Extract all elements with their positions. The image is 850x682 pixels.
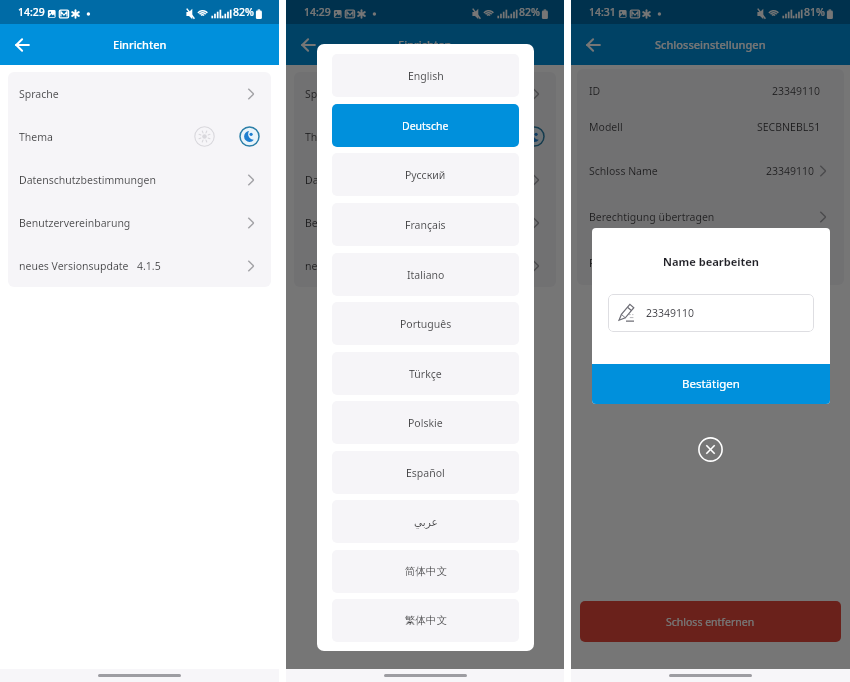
button[interactable]: Thema bbox=[8, 115, 271, 158]
staticText: SECBNEBL51 bbox=[757, 120, 821, 134]
staticText: English bbox=[408, 69, 444, 83]
button[interactable]: Deutsche bbox=[332, 104, 519, 147]
button[interactable]: Español bbox=[332, 451, 519, 494]
staticText: Deutsche bbox=[402, 119, 449, 133]
button[interactable]: Italiano bbox=[332, 253, 519, 296]
staticText: Thema bbox=[19, 130, 53, 144]
button[interactable]: Close bbox=[698, 437, 723, 462]
staticText: 81% bbox=[804, 5, 825, 19]
staticText: Italiano bbox=[407, 268, 445, 282]
staticText: عربي bbox=[414, 516, 438, 528]
staticText: Schloss Name bbox=[589, 164, 658, 178]
staticText: 14:29 bbox=[18, 5, 45, 19]
staticText: Datenschutzbestimmungen bbox=[305, 173, 442, 187]
staticText: 简体中文 bbox=[405, 565, 447, 578]
staticText: Polskie bbox=[408, 416, 443, 430]
staticText: ID bbox=[589, 84, 601, 98]
staticText: Datenschutzbestimmungen bbox=[19, 173, 156, 187]
button[interactable]: Polskie bbox=[332, 401, 519, 444]
button[interactable]: Light theme bbox=[194, 126, 215, 147]
button[interactable]: Back bbox=[294, 31, 322, 59]
button[interactable]: Schloss entfernen bbox=[580, 601, 841, 642]
button[interactable]: Thema bbox=[294, 115, 556, 158]
staticText: Benutzervereinbarung bbox=[305, 216, 417, 230]
staticText: 4.1.5 bbox=[137, 259, 161, 273]
button[interactable]: Passwort verwalten bbox=[577, 241, 844, 285]
button[interactable]: neues Versionsupdate bbox=[294, 244, 556, 287]
staticText: 23349110 bbox=[772, 84, 821, 98]
button[interactable]: Datenschutzbestimmungen bbox=[8, 158, 271, 201]
button[interactable]: Benutzervereinbarung bbox=[8, 201, 271, 244]
staticText: neues Versionsupdate bbox=[305, 259, 415, 273]
staticText: 23349110 bbox=[766, 164, 815, 178]
button[interactable]: Sprache bbox=[8, 72, 271, 115]
staticText: Русский bbox=[405, 168, 446, 182]
button[interactable]: English bbox=[332, 54, 519, 97]
staticText: 82% bbox=[233, 5, 254, 19]
staticText: Sprache bbox=[305, 87, 345, 101]
button[interactable]: 繁体中文 bbox=[332, 599, 519, 642]
staticText: Türkçe bbox=[409, 367, 442, 381]
button[interactable]: عربي bbox=[332, 500, 519, 543]
button[interactable]: Dark theme bbox=[524, 126, 545, 147]
staticText: Schloss entfernen bbox=[666, 615, 755, 629]
staticText: 23349110 bbox=[646, 306, 695, 320]
staticText: Schlosseinstellungen bbox=[655, 37, 766, 52]
staticText: Português bbox=[400, 317, 452, 331]
button[interactable]: Bestätigen bbox=[592, 364, 830, 404]
button[interactable]: Schloss Name bbox=[577, 148, 844, 194]
staticText: 82% bbox=[519, 5, 540, 19]
button[interactable]: 简体中文 bbox=[332, 550, 519, 593]
staticText: 14:31 bbox=[589, 5, 616, 19]
staticText: Español bbox=[406, 466, 445, 480]
staticText: Einrichten bbox=[113, 37, 167, 52]
staticText: Benutzervereinbarung bbox=[19, 216, 131, 230]
button[interactable]: neues Versionsupdate bbox=[8, 244, 271, 287]
button[interactable]: Back bbox=[8, 31, 36, 59]
staticText: Modell bbox=[589, 120, 623, 134]
button[interactable]: Sprache bbox=[294, 72, 556, 115]
staticText: 14:29 bbox=[304, 5, 331, 19]
button[interactable]: Back bbox=[579, 31, 607, 59]
button[interactable]: Berechtigung übertragen bbox=[577, 194, 844, 239]
button[interactable]: Türkçe bbox=[332, 352, 519, 395]
button[interactable]: Modell bbox=[577, 108, 844, 146]
staticText: Einrichten bbox=[398, 37, 452, 52]
button[interactable]: 23349110 bbox=[608, 294, 814, 332]
staticText: neues Versionsupdate bbox=[19, 259, 129, 273]
button[interactable]: ID bbox=[577, 72, 844, 110]
staticText: Français bbox=[405, 218, 446, 232]
button[interactable]: Dark theme bbox=[239, 126, 260, 147]
button[interactable]: Datenschutzbestimmungen bbox=[294, 158, 556, 201]
button[interactable]: Benutzervereinbarung bbox=[294, 201, 556, 244]
button[interactable]: Português bbox=[332, 302, 519, 345]
staticText: 4.1.5 bbox=[423, 259, 447, 273]
staticText: Thema bbox=[305, 130, 339, 144]
staticText: 繁体中文 bbox=[405, 614, 447, 627]
button[interactable]: Русский bbox=[332, 153, 519, 196]
staticText: Passwort verwalten bbox=[589, 256, 686, 270]
staticText: Sprache bbox=[19, 87, 59, 101]
staticText: Berechtigung übertragen bbox=[589, 210, 715, 224]
staticText: Bestätigen bbox=[682, 376, 740, 392]
staticText: Name bearbeiten bbox=[592, 254, 830, 269]
button[interactable]: Français bbox=[332, 203, 519, 246]
